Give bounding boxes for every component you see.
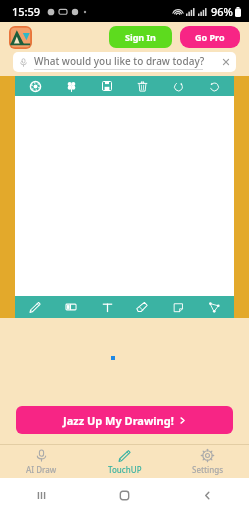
- button[interactable]: Delete: [126, 76, 158, 96]
- button[interactable]: Text: [91, 297, 123, 317]
- staticText: What would you like to draw today?: [34, 54, 205, 68]
- button[interactable]: Sign In: [109, 26, 172, 48]
- staticText: 15:59: [12, 4, 41, 19]
- staticText: Jazz Up My Drawing!: [63, 413, 174, 428]
- button[interactable]: Home: [83, 478, 166, 512]
- button[interactable]: What would you like to draw today?: [13, 52, 236, 72]
- button[interactable]: Go Pro: [180, 26, 240, 48]
- button[interactable]: AI Draw: [0, 445, 83, 478]
- button[interactable]: Recent apps: [0, 478, 83, 512]
- staticText: Settings: [192, 464, 224, 475]
- staticText: TouchUP: [108, 464, 142, 475]
- button[interactable]: Back: [166, 478, 249, 512]
- button[interactable]: Polygon: [198, 297, 230, 317]
- button[interactable]: Save: [91, 76, 123, 96]
- button[interactable]: Sticker: [162, 297, 194, 317]
- button[interactable]: Clear: [222, 58, 230, 66]
- button[interactable]: App logo: [9, 26, 32, 49]
- staticText: AI Draw: [26, 464, 57, 475]
- button[interactable]: TouchUP: [83, 445, 166, 478]
- button[interactable]: Filters: [19, 76, 51, 96]
- staticText: Sign In: [125, 31, 156, 43]
- button[interactable]: Eraser: [126, 297, 158, 317]
- button[interactable]: Settings: [166, 445, 249, 478]
- button[interactable]: Undo: [198, 76, 230, 96]
- staticText: 96%: [211, 4, 233, 19]
- button[interactable]: Redo: [162, 76, 194, 96]
- button[interactable]: Effects: [55, 76, 87, 96]
- staticText: Go Pro: [195, 31, 225, 43]
- button[interactable]: Jazz Up My Drawing!: [16, 406, 233, 434]
- button[interactable]: Pencil: [19, 297, 51, 317]
- button[interactable]: Shapes: [55, 297, 87, 317]
